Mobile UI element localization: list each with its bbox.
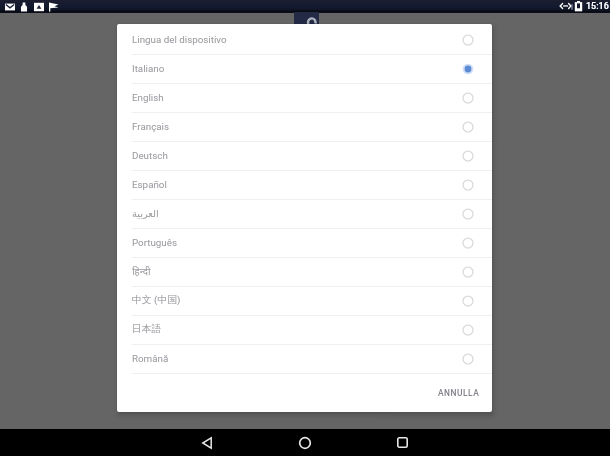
staticText: English: [132, 92, 164, 103]
staticText: ANNULLA: [438, 388, 480, 398]
button[interactable]: Română: [117, 345, 492, 373]
button[interactable]: Português: [117, 229, 492, 257]
staticText: 15:16: [586, 1, 609, 12]
staticText: Italiano: [132, 63, 165, 74]
button[interactable]: 中文 (中国): [117, 287, 492, 315]
staticText: Lingua del dispositivo: [132, 34, 227, 45]
button[interactable]: ANNULLA: [424, 380, 492, 406]
button[interactable]: Home: [256, 429, 353, 456]
button[interactable]: Recents: [353, 429, 451, 456]
button[interactable]: Lingua del dispositivo: [117, 26, 492, 54]
button[interactable]: 日本語: [117, 316, 492, 344]
staticText: Português: [132, 237, 178, 248]
staticText: Română: [132, 353, 169, 364]
staticText: 中文 (中国): [132, 294, 181, 306]
staticText: Deutsch: [132, 150, 168, 161]
staticText: 日本語: [132, 323, 162, 335]
staticText: हिन्दी: [132, 265, 151, 278]
button[interactable]: English: [117, 84, 492, 112]
button[interactable]: Back: [158, 429, 256, 456]
button[interactable]: Français: [117, 113, 492, 141]
button[interactable]: Español: [117, 171, 492, 199]
staticText: العربية: [132, 208, 159, 219]
button[interactable]: Italiano: [117, 55, 492, 83]
staticText: Français: [132, 121, 170, 132]
button[interactable]: العربية: [117, 200, 492, 228]
staticText: Español: [132, 179, 167, 190]
button[interactable]: हिन्दी: [117, 258, 492, 286]
button[interactable]: Deutsch: [117, 142, 492, 170]
